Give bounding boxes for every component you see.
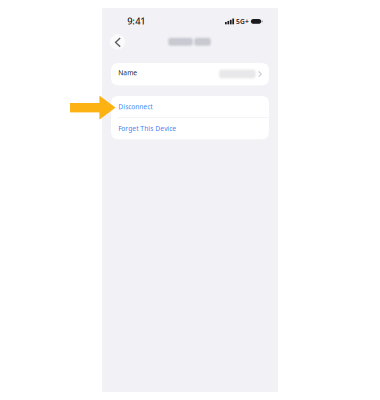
button[interactable]: Back xyxy=(107,32,127,52)
button[interactable]: Forget This Device xyxy=(111,118,269,139)
staticText: Forget This Device xyxy=(118,124,176,133)
button[interactable]: Disconnect xyxy=(111,96,269,117)
staticText: 9:41 xyxy=(127,15,145,27)
staticText: Disconnect xyxy=(118,102,152,111)
staticText: Name xyxy=(118,68,137,77)
button[interactable]: Name xyxy=(111,63,269,85)
staticText: 5G+ xyxy=(236,17,249,26)
